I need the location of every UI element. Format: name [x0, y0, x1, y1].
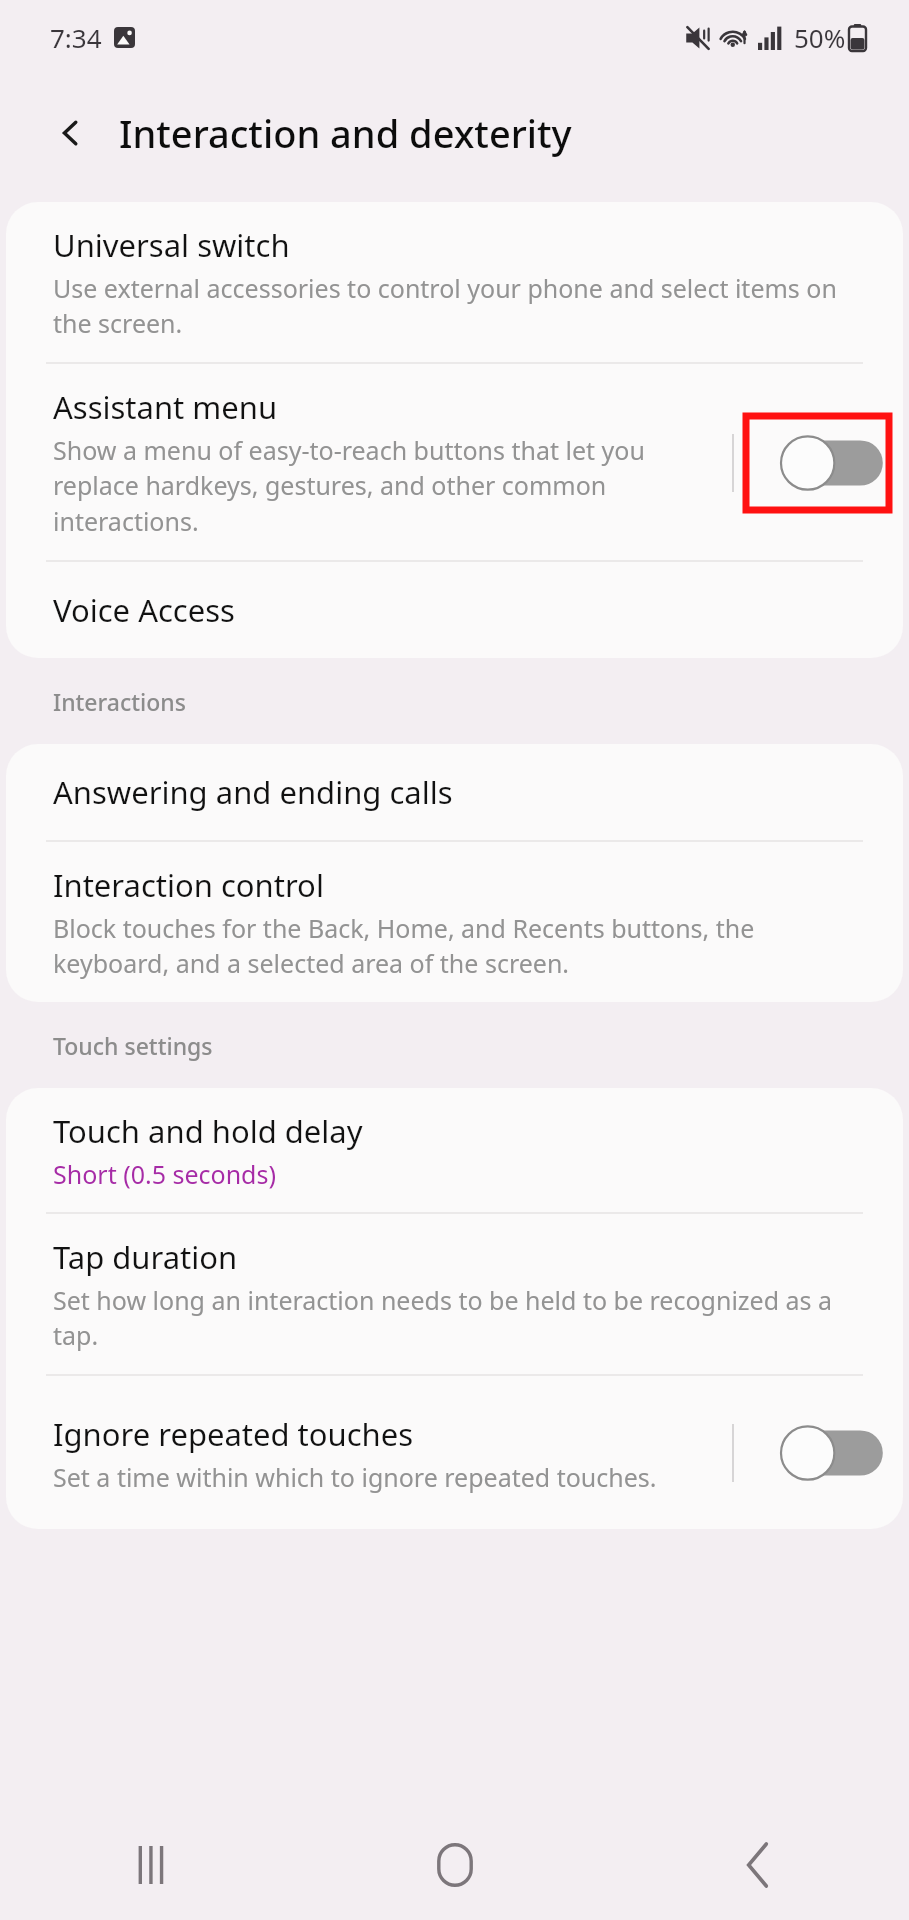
- staticText: Short (0.5 seconds): [53, 1157, 276, 1191]
- staticText: Set a time within which to ignore repeat…: [53, 1460, 657, 1494]
- button[interactable]: Assistant menu: [6, 364, 903, 560]
- staticText: Universal switch: [53, 224, 290, 266]
- button[interactable]: Answering and ending calls: [6, 744, 903, 840]
- staticText: Interaction and dexterity: [119, 107, 572, 159]
- staticText: Interactions: [53, 686, 186, 717]
- staticText: Touch settings: [53, 1030, 213, 1061]
- button[interactable]: Universal switch: [6, 202, 903, 362]
- staticText: Tap duration: [53, 1236, 238, 1278]
- button[interactable]: Home: [303, 1810, 606, 1920]
- staticText: Ignore repeated touches: [53, 1413, 414, 1455]
- staticText: Voice Access: [53, 589, 235, 631]
- staticText: Set how long an interaction needs to be …: [53, 1283, 863, 1353]
- staticText: Touch and hold delay: [53, 1110, 363, 1152]
- staticText: Answering and ending calls: [53, 771, 453, 813]
- button[interactable]: Recents: [0, 1810, 303, 1920]
- button[interactable]: Back: [606, 1810, 909, 1920]
- staticText: 50%: [794, 20, 846, 55]
- staticText: Interaction control: [53, 864, 324, 906]
- button[interactable]: Ignore repeated touches: [6, 1376, 903, 1529]
- button[interactable]: Voice Access: [6, 562, 903, 658]
- button[interactable]: Toggle Ignore repeated touches: [780, 1424, 886, 1482]
- button[interactable]: Tap duration: [6, 1214, 903, 1374]
- button[interactable]: Back: [44, 106, 98, 160]
- button[interactable]: Interaction control: [6, 842, 903, 1002]
- button[interactable]: Touch and hold delay: [6, 1088, 903, 1212]
- staticText: Assistant menu: [53, 386, 278, 428]
- staticText: Block touches for the Back, Home, and Re…: [53, 911, 863, 981]
- staticText: Use external accessories to control your…: [53, 271, 863, 341]
- staticText: 7:34: [50, 20, 102, 55]
- staticText: Show a menu of easy-to-reach buttons tha…: [53, 433, 710, 539]
- button[interactable]: Toggle Assistant menu: [780, 434, 886, 492]
